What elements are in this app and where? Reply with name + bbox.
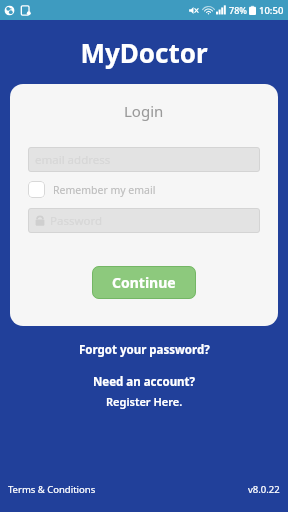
staticText: 10:50 <box>259 4 284 17</box>
staticText: Continue <box>112 273 176 292</box>
staticText: Need an account? <box>93 374 196 390</box>
staticText: Terms & Conditions <box>8 483 96 496</box>
staticText: Login <box>124 101 164 121</box>
staticText: v8.0.22 <box>248 483 280 496</box>
button[interactable]: Password <box>28 208 260 233</box>
staticText: MyDoctor <box>0 35 288 70</box>
button[interactable]: Remember my email <box>28 181 260 198</box>
staticText: email address <box>35 152 111 168</box>
button[interactable]: Forgot your password? <box>69 340 220 360</box>
staticText: Forgot your password? <box>79 342 210 358</box>
staticText: Remember my email <box>53 183 156 197</box>
button[interactable]: Terms & Conditions <box>8 481 96 498</box>
button[interactable]: Register Here. <box>96 393 193 410</box>
button[interactable]: Continue <box>92 266 196 299</box>
staticText: Register Here. <box>106 394 183 409</box>
staticText: 78% <box>229 4 247 16</box>
staticText: Password <box>50 213 103 229</box>
button[interactable]: email address <box>28 147 260 172</box>
